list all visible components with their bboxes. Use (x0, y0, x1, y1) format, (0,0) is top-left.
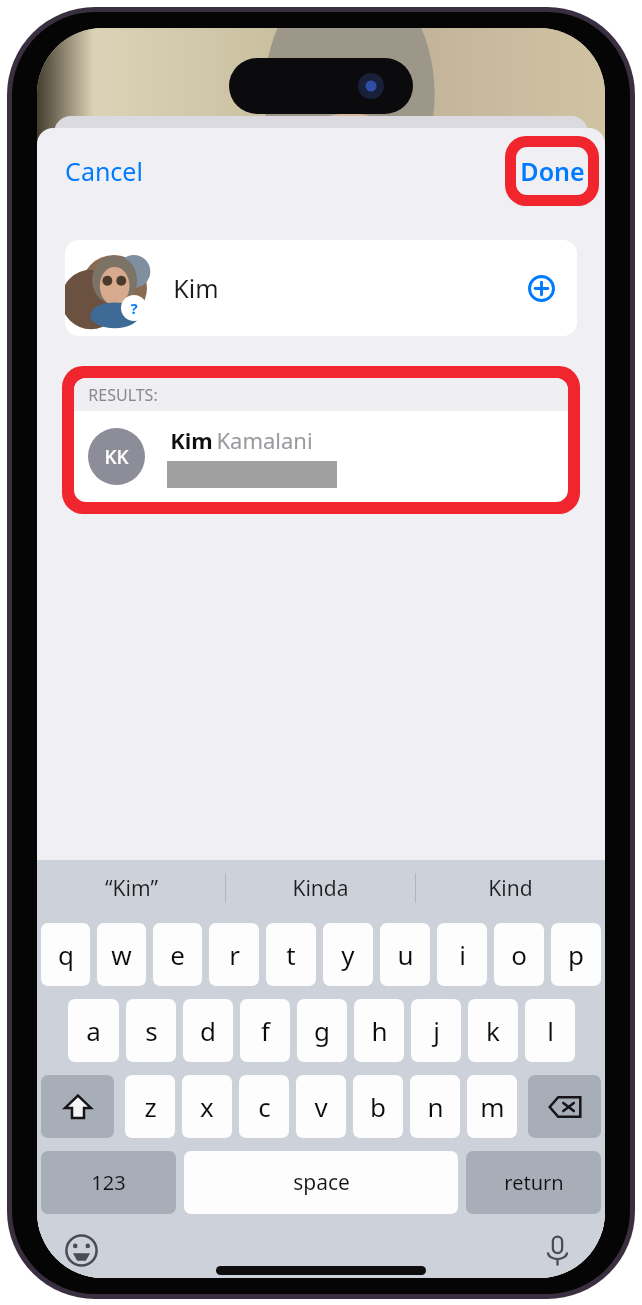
button[interactable]: ? (65, 240, 577, 336)
button[interactable]: w (97, 923, 146, 986)
staticText: w (111, 937, 132, 972)
button[interactable]: f (240, 999, 290, 1062)
button[interactable]: Backspace (528, 1075, 601, 1138)
staticText: space (293, 1168, 350, 1197)
button[interactable]: t (266, 923, 316, 986)
staticText: RESULTS: (88, 384, 158, 406)
staticText: h (371, 1013, 388, 1048)
staticText: i (459, 937, 466, 972)
button[interactable]: u (380, 923, 430, 986)
staticText: j (433, 1013, 440, 1048)
staticText: Kim (173, 271, 219, 305)
staticText: y (341, 937, 355, 972)
button[interactable]: “Kim” (37, 860, 225, 916)
button[interactable]: m (467, 1075, 517, 1138)
staticText: u (397, 937, 414, 972)
staticText: 123 (91, 1169, 126, 1196)
staticText: Kind (488, 874, 533, 903)
staticText: Done (520, 154, 585, 188)
staticText: l (547, 1013, 554, 1048)
staticText: return (504, 1169, 564, 1196)
button[interactable]: y (323, 923, 373, 986)
staticText: b (370, 1089, 386, 1124)
button[interactable]: Shift (41, 1075, 114, 1138)
button[interactable]: d (183, 999, 233, 1062)
button[interactable]: l (525, 999, 575, 1062)
button[interactable]: i (437, 923, 487, 986)
button[interactable]: e (153, 923, 202, 986)
button[interactable]: KK (74, 411, 568, 502)
button[interactable]: o (494, 923, 544, 986)
button[interactable]: k (468, 999, 518, 1062)
staticText: r (229, 937, 240, 972)
staticText: k (486, 1013, 500, 1048)
staticText: o (511, 937, 527, 972)
button[interactable]: space (184, 1151, 458, 1214)
staticText: a (86, 1013, 101, 1048)
staticText: f (261, 1013, 270, 1048)
staticText: ? (130, 298, 138, 318)
staticText: e (170, 937, 185, 972)
staticText: c (258, 1089, 271, 1124)
button[interactable]: v (296, 1075, 346, 1138)
staticText: m (480, 1089, 505, 1124)
button[interactable]: Cancel (51, 145, 157, 197)
staticText: d (200, 1013, 216, 1048)
button[interactable]: Kinda (226, 860, 415, 916)
button[interactable]: return (466, 1151, 601, 1214)
staticText: x (200, 1089, 214, 1124)
button[interactable]: q (41, 923, 90, 986)
button[interactable]: Dictation (533, 1226, 581, 1274)
button[interactable]: b (353, 1075, 403, 1138)
staticText: g (314, 1013, 330, 1048)
staticText: t (286, 937, 296, 972)
button[interactable]: Done (516, 147, 588, 195)
staticText: KK (104, 444, 129, 470)
staticText: z (144, 1089, 157, 1124)
staticText: Kim (167, 425, 216, 455)
button[interactable]: j (411, 999, 461, 1062)
staticText: p (568, 937, 584, 972)
staticText: “Kim” (105, 874, 158, 903)
button[interactable]: r (209, 923, 259, 986)
button[interactable]: Emoji keyboard (57, 1226, 105, 1274)
button[interactable]: Add recipient (519, 266, 563, 310)
button[interactable]: g (297, 999, 347, 1062)
button[interactable]: 123 (41, 1151, 176, 1214)
staticText: q (58, 937, 74, 972)
button[interactable]: n (410, 1075, 460, 1138)
staticText: Kamalani (216, 425, 313, 455)
button[interactable]: Kind (416, 860, 605, 916)
button[interactable]: c (239, 1075, 289, 1138)
button[interactable]: z (125, 1075, 175, 1138)
staticText: v (314, 1089, 328, 1124)
button[interactable]: s (126, 999, 176, 1062)
button[interactable]: p (551, 923, 601, 986)
button[interactable]: a (68, 999, 119, 1062)
button[interactable]: h (354, 999, 404, 1062)
staticText: s (145, 1013, 158, 1048)
button[interactable]: x (182, 1075, 232, 1138)
staticText: Cancel (65, 154, 143, 188)
staticText: Kinda (292, 874, 349, 903)
staticText: n (427, 1089, 444, 1124)
